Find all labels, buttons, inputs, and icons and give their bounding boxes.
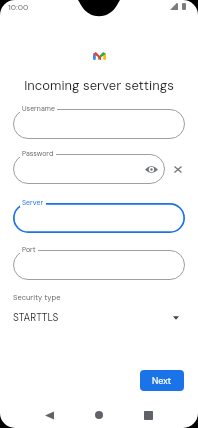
button[interactable]: Show password — [13, 154, 165, 184]
staticText: 10:00 — [8, 2, 29, 12]
button[interactable] — [13, 250, 185, 280]
button[interactable]: Home — [87, 403, 111, 427]
button[interactable]: Recent apps — [136, 403, 160, 427]
button[interactable]: Next — [140, 370, 184, 391]
staticText: Next — [152, 375, 172, 387]
button[interactable]: Clear — [170, 161, 186, 177]
staticText: Incoming server settings — [0, 77, 198, 94]
button[interactable] — [13, 109, 185, 139]
staticText: STARTTLS — [13, 311, 59, 324]
button[interactable]: Back — [37, 403, 61, 427]
staticText: Username — [22, 104, 55, 113]
button[interactable]: Show password — [144, 162, 158, 176]
staticText: Password — [22, 149, 54, 158]
staticText: Security type — [13, 293, 61, 303]
button[interactable]: Security type — [13, 293, 179, 324]
staticText: Port — [22, 245, 36, 254]
staticText: Server — [22, 198, 44, 207]
button[interactable] — [13, 203, 185, 233]
